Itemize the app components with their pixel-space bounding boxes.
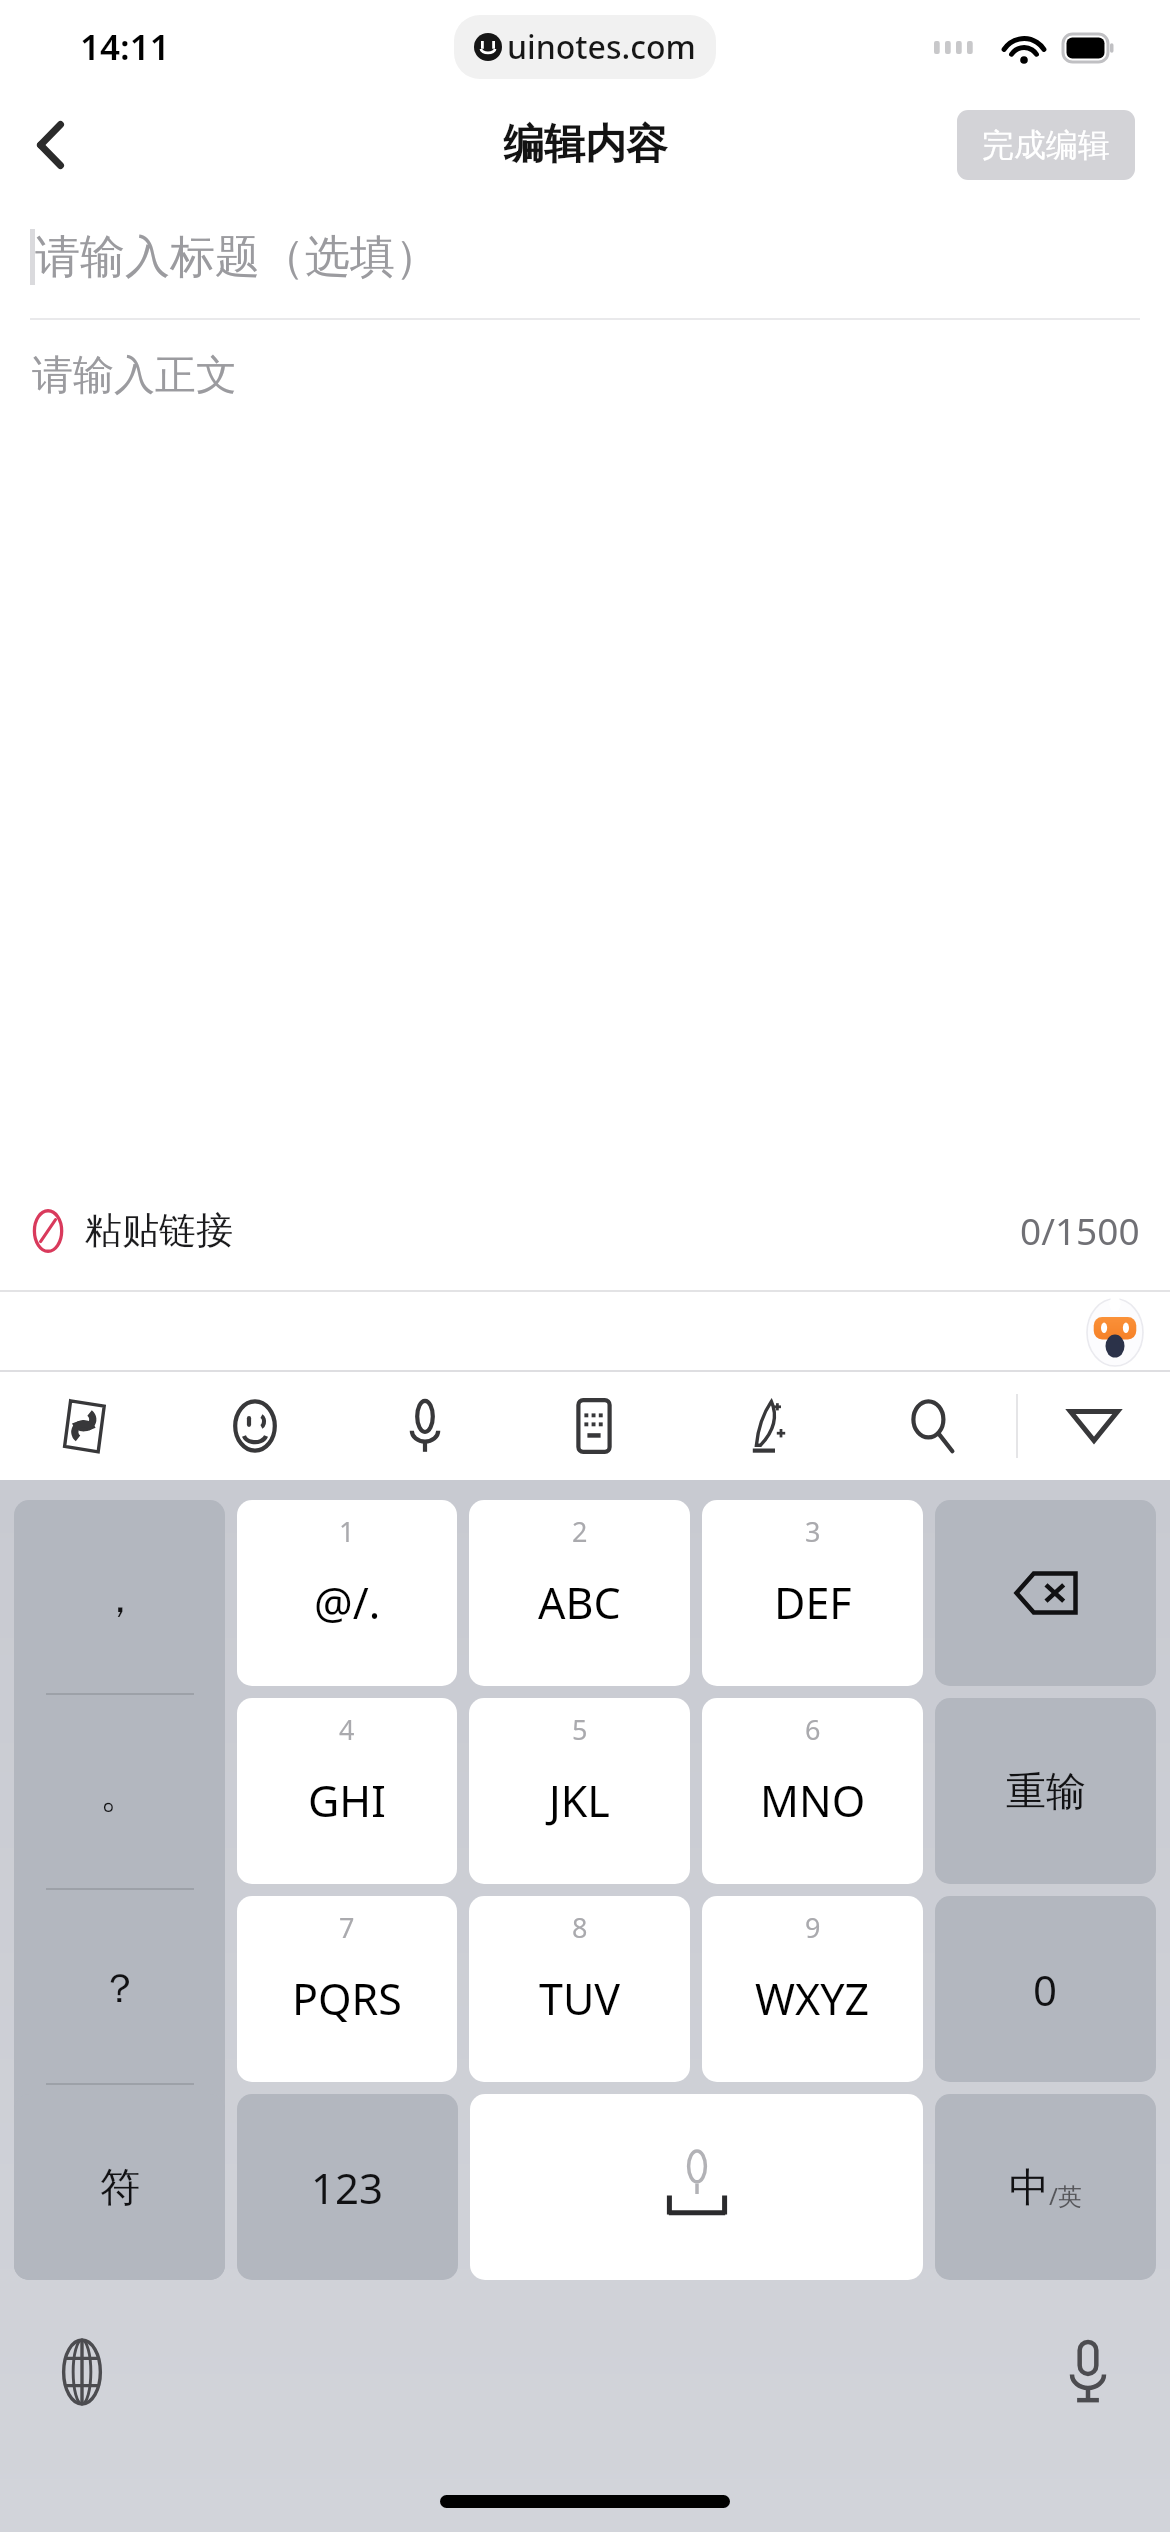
staticText: 123	[311, 2159, 384, 2216]
button[interactable]: 中	[935, 2094, 1156, 2280]
staticText: ，	[100, 1573, 140, 1623]
staticText: 中	[1009, 2162, 1049, 2212]
button[interactable]: ？	[14, 1890, 225, 2085]
staticText: 粘贴链接	[85, 1207, 233, 1254]
button[interactable]: Search	[847, 1372, 1016, 1480]
button[interactable]: Space	[470, 2094, 923, 2280]
button[interactable]: 符	[14, 2094, 225, 2280]
button[interactable]: Handwriting	[678, 1372, 847, 1480]
button[interactable]: 5	[469, 1698, 690, 1884]
button[interactable]: 粘贴链接	[30, 1195, 233, 1266]
staticText: 9	[805, 1909, 821, 1946]
button[interactable]: 请输入正文	[0, 320, 1170, 1170]
staticText: PQRS	[292, 1969, 402, 2028]
staticText: 0	[1033, 1961, 1058, 2018]
staticText: 。	[100, 1768, 140, 1818]
button[interactable]: Keyboard layout	[509, 1372, 678, 1480]
button[interactable]: 2	[469, 1500, 690, 1686]
staticText: ？	[100, 1963, 140, 2013]
button[interactable]: ，	[14, 1500, 225, 1695]
button[interactable]: 8	[469, 1896, 690, 2082]
button[interactable]: Voice input	[340, 1372, 509, 1480]
button[interactable]: 1	[237, 1500, 457, 1686]
staticText: 5	[572, 1711, 588, 1748]
staticText: MNO	[760, 1771, 866, 1830]
button[interactable]: 。	[14, 1695, 225, 1890]
button[interactable]: 7	[237, 1896, 457, 2082]
staticText: 完成编辑	[982, 125, 1110, 165]
staticText: @/.	[314, 1573, 381, 1632]
button[interactable]: Back	[0, 94, 100, 196]
staticText: ！	[100, 2158, 140, 2208]
staticText: uinotes.com	[507, 25, 696, 69]
staticText: 编辑内容	[503, 119, 667, 171]
staticText: 6	[805, 1711, 821, 1748]
staticText: JKL	[549, 1771, 610, 1830]
button[interactable]: Emoji	[170, 1372, 340, 1480]
button[interactable]: 123	[237, 2094, 458, 2280]
button[interactable]: 请输入标题（选填）	[0, 196, 1170, 318]
staticText: DEF	[774, 1573, 852, 1632]
staticText: /英	[1049, 2179, 1082, 2212]
staticText: 1	[339, 1513, 355, 1550]
staticText: 请输入正文	[32, 350, 237, 402]
staticText: 0/1500	[1020, 1205, 1140, 1255]
button[interactable]: 6	[702, 1698, 923, 1884]
staticText: ABC	[538, 1573, 621, 1632]
staticText: GHI	[308, 1771, 386, 1830]
staticText: 2	[572, 1513, 588, 1550]
button[interactable]: ！	[14, 2085, 225, 2280]
staticText: 14:11	[80, 23, 170, 71]
staticText: 符	[100, 2162, 140, 2212]
staticText: 重输	[1006, 1766, 1086, 1816]
button[interactable]: 3	[702, 1500, 923, 1686]
staticText: 请输入标题（选填）	[35, 229, 440, 286]
staticText: 4	[339, 1711, 355, 1748]
button[interactable]: 4	[237, 1698, 457, 1884]
button[interactable]: Backspace	[935, 1500, 1156, 1686]
staticText: 3	[805, 1513, 821, 1550]
button[interactable]: 9	[702, 1896, 923, 2082]
button[interactable]: 0	[935, 1896, 1156, 2082]
button[interactable]: Sogou keyboard	[0, 1372, 170, 1480]
button[interactable]: 重输	[935, 1698, 1156, 1884]
staticText: 7	[339, 1909, 355, 1946]
staticText: WXYZ	[755, 1969, 870, 2028]
staticText: 8	[572, 1909, 588, 1946]
button[interactable]: Dictation	[1038, 2322, 1138, 2422]
button[interactable]: Hide keyboard	[1018, 1372, 1170, 1480]
button[interactable]: 完成编辑	[957, 110, 1135, 180]
staticText: TUV	[539, 1969, 621, 2028]
button[interactable]: Switch language	[32, 2322, 132, 2422]
